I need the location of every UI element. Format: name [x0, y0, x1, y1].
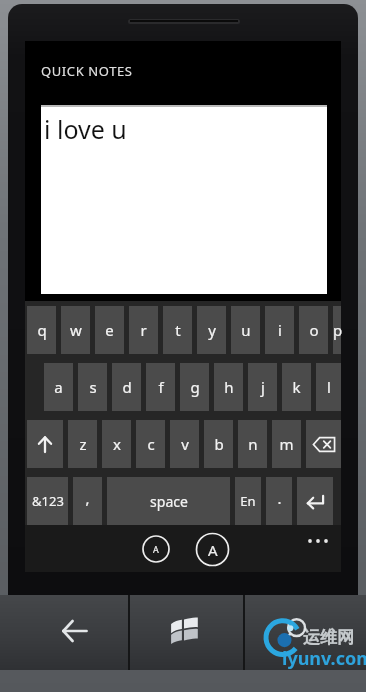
button[interactable]: More options: [301, 524, 335, 558]
button[interactable]: Search: [272, 595, 324, 670]
button[interactable]: q: [27, 306, 56, 354]
staticText: space: [150, 492, 188, 511]
staticText: d: [122, 377, 132, 397]
button[interactable]: r: [129, 306, 158, 354]
button[interactable]: Enter: [297, 477, 333, 525]
button[interactable]: v: [170, 420, 199, 468]
staticText: ,: [85, 488, 90, 508]
button[interactable]: x: [102, 420, 131, 468]
button[interactable]: b: [204, 420, 233, 468]
button[interactable]: c: [136, 420, 165, 468]
staticText: f: [158, 377, 164, 397]
button[interactable]: g: [180, 363, 209, 411]
button[interactable]: i love u: [41, 105, 327, 294]
button[interactable]: o: [299, 306, 328, 354]
button[interactable]: a: [44, 363, 73, 411]
staticText: e: [105, 320, 114, 340]
button[interactable]: m: [272, 420, 301, 468]
staticText: u: [241, 320, 251, 340]
button[interactable]: .: [266, 477, 292, 525]
button[interactable]: u: [231, 306, 260, 354]
staticText: j: [261, 377, 265, 397]
staticText: r: [140, 320, 147, 340]
staticText: .: [277, 488, 282, 508]
staticText: o: [309, 320, 319, 340]
staticText: w: [70, 320, 82, 340]
button[interactable]: w: [61, 306, 90, 354]
staticText: a: [54, 377, 63, 397]
button[interactable]: s: [78, 363, 107, 411]
button[interactable]: h: [214, 363, 243, 411]
button[interactable]: Shift: [27, 420, 63, 468]
button[interactable]: p: [333, 306, 341, 354]
button[interactable]: Backspace: [306, 420, 341, 468]
button[interactable]: i: [265, 306, 294, 354]
button[interactable]: z: [68, 420, 97, 468]
button[interactable]: ,: [73, 477, 102, 525]
button[interactable]: Back: [48, 595, 100, 670]
staticText: x: [113, 434, 121, 454]
button[interactable]: &123: [27, 477, 68, 525]
button[interactable]: Start: [158, 595, 210, 670]
staticText: n: [248, 434, 258, 454]
button[interactable]: En: [235, 477, 261, 525]
staticText: g: [190, 377, 200, 397]
staticText: z: [79, 434, 87, 454]
button[interactable]: Large text: [194, 531, 230, 567]
staticText: t: [175, 320, 181, 340]
staticText: i love u: [44, 112, 127, 146]
button[interactable]: e: [95, 306, 124, 354]
staticText: s: [89, 377, 97, 397]
staticText: k: [292, 377, 301, 397]
button[interactable]: space: [107, 477, 230, 525]
staticText: c: [147, 434, 155, 454]
staticText: i: [278, 320, 282, 340]
staticText: &123: [32, 492, 64, 510]
staticText: l: [327, 377, 331, 397]
staticText: iyunv.com: [282, 646, 366, 671]
button[interactable]: y: [197, 306, 226, 354]
button[interactable]: t: [163, 306, 192, 354]
button[interactable]: l: [316, 363, 341, 411]
button[interactable]: n: [238, 420, 267, 468]
staticText: q: [37, 320, 47, 340]
staticText: QUICK NOTES: [41, 62, 133, 80]
staticText: h: [224, 377, 234, 397]
staticText: y: [208, 320, 216, 340]
staticText: p: [333, 320, 341, 340]
staticText: v: [181, 434, 189, 454]
button[interactable]: d: [112, 363, 141, 411]
button[interactable]: Small text: [142, 535, 170, 563]
button[interactable]: k: [282, 363, 311, 411]
button[interactable]: j: [248, 363, 277, 411]
staticText: A: [153, 543, 159, 555]
staticText: b: [214, 434, 224, 454]
staticText: 运维网: [303, 627, 354, 648]
staticText: En: [240, 492, 256, 510]
staticText: A: [208, 540, 218, 560]
button[interactable]: f: [146, 363, 175, 411]
staticText: m: [279, 434, 294, 454]
